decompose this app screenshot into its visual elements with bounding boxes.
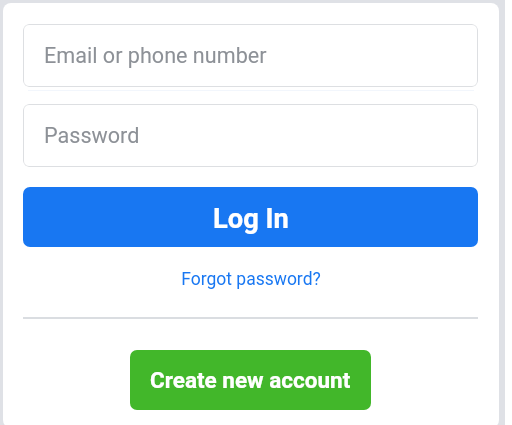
button[interactable]: Forgot password? (181, 269, 321, 290)
staticText: Create new account (150, 367, 351, 393)
button[interactable]: Create new account (130, 350, 371, 410)
button[interactable]: Password (23, 104, 478, 167)
staticText: Forgot password? (181, 269, 321, 290)
staticText: Log In (213, 203, 289, 235)
staticText: Password (44, 123, 140, 148)
button[interactable]: Email or phone number (23, 24, 478, 87)
button[interactable]: Log In (23, 187, 478, 247)
staticText: Email or phone number (44, 43, 267, 68)
